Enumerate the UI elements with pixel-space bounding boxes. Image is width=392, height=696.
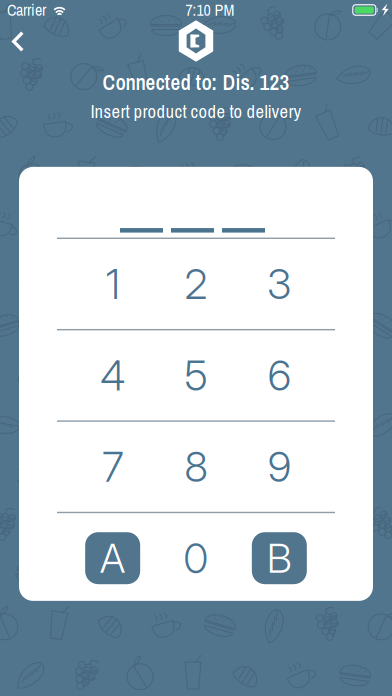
- staticText: 9: [268, 442, 291, 492]
- button[interactable]: 8: [154, 422, 238, 512]
- button[interactable]: 3: [238, 239, 321, 329]
- button[interactable]: 5: [154, 330, 238, 420]
- staticText: 6: [268, 350, 291, 400]
- button[interactable]: 7: [71, 422, 154, 512]
- staticText: B: [267, 534, 292, 582]
- button[interactable]: 1: [71, 239, 154, 329]
- button[interactable]: Back: [0, 24, 36, 59]
- staticText: 7:10 PM: [185, 0, 234, 21]
- staticText: 4: [100, 350, 125, 400]
- staticText: 3: [267, 259, 291, 309]
- button[interactable]: 4: [71, 330, 154, 420]
- button[interactable]: 6: [238, 330, 321, 420]
- staticText: Insert product code to delivery: [90, 99, 301, 124]
- staticText: 8: [184, 442, 207, 492]
- button[interactable]: 0: [154, 513, 238, 603]
- button[interactable]: 9: [238, 422, 321, 512]
- staticText: 0: [183, 533, 208, 583]
- staticText: 2: [184, 259, 207, 309]
- staticText: Connected to: Dis. 123: [102, 68, 289, 97]
- button[interactable]: 2: [154, 239, 238, 329]
- button[interactable]: B: [238, 513, 321, 603]
- button[interactable]: A: [71, 513, 154, 603]
- staticText: 1: [106, 259, 120, 309]
- staticText: Carrier: [7, 0, 46, 21]
- staticText: 5: [184, 350, 207, 400]
- staticText: A: [100, 534, 126, 582]
- staticText: 7: [102, 442, 123, 492]
